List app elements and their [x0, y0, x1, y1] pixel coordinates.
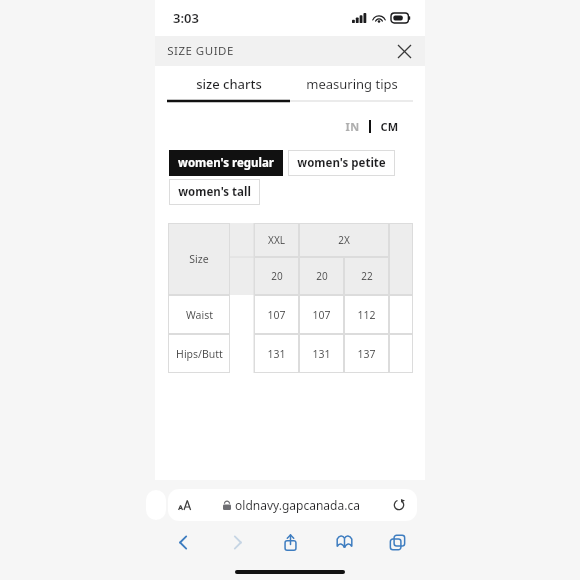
- staticText: 107: [267, 308, 286, 322]
- staticText: Size: [189, 252, 209, 266]
- button[interactable]: Share: [276, 528, 304, 556]
- staticText: 137: [357, 347, 376, 361]
- button[interactable]: Close: [392, 39, 416, 63]
- button[interactable]: Bookmarks: [330, 528, 358, 556]
- staticText: 22: [361, 269, 373, 283]
- staticText: women's petite: [297, 155, 386, 171]
- button[interactable]: measuring tips: [290, 66, 413, 102]
- staticText: size charts: [196, 75, 262, 93]
- button[interactable]: Reload: [391, 497, 407, 513]
- staticText: 131: [312, 347, 331, 361]
- staticText: women's tall: [178, 184, 251, 200]
- button[interactable]: Tabs: [383, 528, 411, 556]
- staticText: Waist: [186, 308, 213, 322]
- staticText: measuring tips: [306, 75, 398, 93]
- button[interactable]: size charts: [167, 66, 290, 102]
- staticText: 20: [316, 269, 328, 283]
- staticText: CM: [380, 119, 399, 134]
- staticText: XXL: [268, 233, 285, 247]
- staticText: 3:03: [173, 9, 199, 27]
- button[interactable]: Forward: [223, 528, 251, 556]
- button[interactable]: Page settings: [168, 489, 417, 521]
- staticText: 107: [312, 308, 331, 322]
- staticText: Hips/Butt: [176, 347, 223, 361]
- button[interactable]: IN: [341, 117, 364, 136]
- staticText: 131: [267, 347, 286, 361]
- button[interactable]: women's regular: [169, 150, 283, 176]
- staticText: women's regular: [178, 155, 274, 171]
- button[interactable]: women's petite: [288, 150, 395, 176]
- button[interactable]: CM: [376, 117, 403, 136]
- other: Page settings: [178, 500, 193, 510]
- staticText: SIZE GUIDE: [167, 43, 234, 59]
- button[interactable]: Back: [169, 528, 197, 556]
- staticText: 112: [357, 308, 376, 322]
- staticText: oldnavy.gapcanada.ca: [235, 497, 360, 513]
- staticText: IN: [345, 119, 360, 134]
- staticText: 2X: [338, 233, 350, 247]
- button[interactable]: women's tall: [169, 179, 260, 205]
- staticText: 20: [271, 269, 283, 283]
